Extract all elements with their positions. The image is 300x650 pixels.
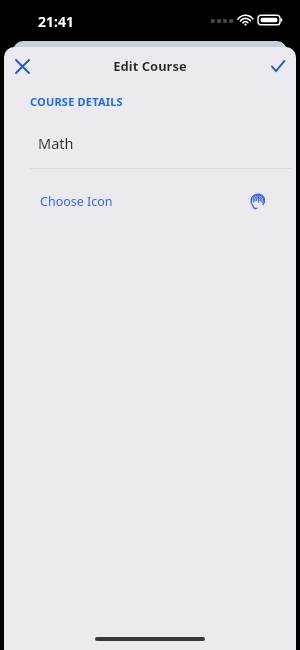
button[interactable]: Math bbox=[4, 130, 296, 156]
staticText: Edit Course bbox=[113, 57, 187, 75]
staticText: Choose Icon bbox=[40, 193, 113, 210]
button[interactable]: Choose Icon bbox=[4, 186, 296, 216]
staticText: Math bbox=[38, 133, 74, 153]
staticText: 21:41 bbox=[38, 12, 74, 31]
button[interactable]: Save bbox=[263, 51, 293, 81]
button[interactable]: Close bbox=[7, 51, 37, 81]
staticText: COURSE DETAILS bbox=[30, 94, 123, 109]
